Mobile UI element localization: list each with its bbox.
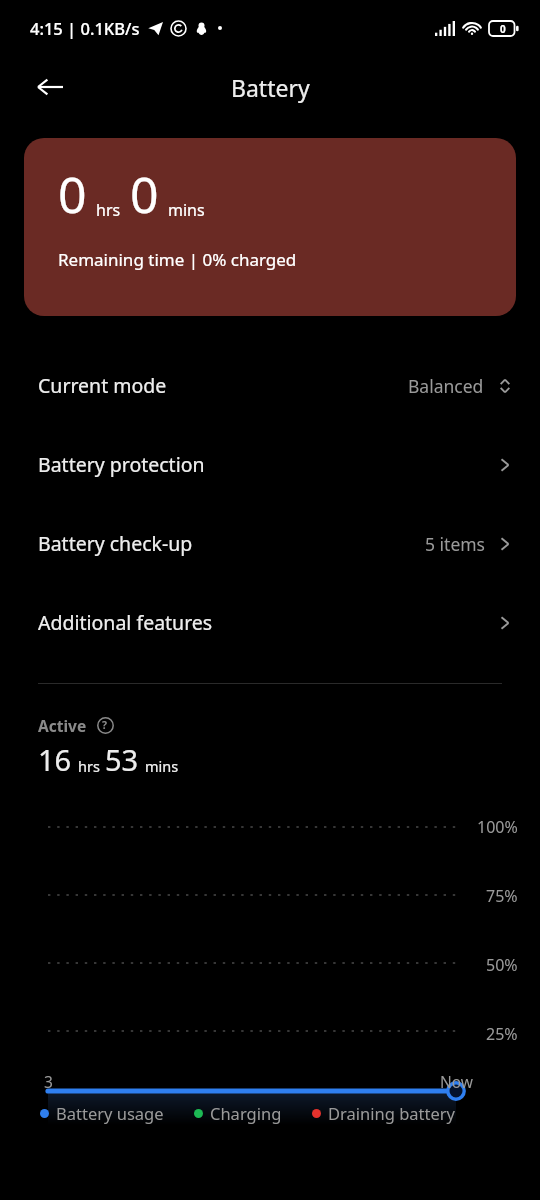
staticText: Draining battery <box>328 1102 455 1124</box>
staticText: Additional features <box>38 609 213 636</box>
staticText: Remaining time | 0% charged <box>58 248 297 271</box>
button[interactable]: Back <box>26 63 74 111</box>
button[interactable]: Charging <box>194 1102 282 1124</box>
staticText: 0 <box>130 160 159 228</box>
staticText: Battery <box>231 72 310 103</box>
button[interactable]: 0 <box>24 138 516 316</box>
staticText: 5 items <box>425 532 486 556</box>
button[interactable]: Help about active time <box>94 714 116 736</box>
staticText: Charging <box>210 1102 282 1124</box>
staticText: 53 <box>105 740 139 779</box>
button[interactable]: Current mode <box>0 346 540 425</box>
staticText: 50% <box>486 954 518 976</box>
staticText: Balanced <box>408 374 484 398</box>
staticText: 75% <box>486 885 518 907</box>
staticText: 0 <box>58 160 87 228</box>
staticText: Battery check-up <box>38 530 193 557</box>
button[interactable]: Draining battery <box>312 1102 455 1124</box>
staticText: Current mode <box>38 372 167 399</box>
button[interactable]: Additional features <box>0 583 540 662</box>
staticText: 16 <box>38 740 72 779</box>
staticText: ? <box>102 718 108 732</box>
staticText: 25% <box>486 1023 518 1045</box>
staticText: hrs <box>78 756 100 776</box>
button[interactable]: Battery usage <box>40 1102 164 1124</box>
staticText: Active <box>38 715 87 736</box>
staticText: Battery usage <box>56 1102 164 1124</box>
staticText: mins <box>168 199 205 221</box>
staticText: 0 <box>500 22 506 36</box>
staticText: mins <box>145 756 179 776</box>
staticText: Now <box>440 1071 474 1092</box>
staticText: 100% <box>477 816 518 838</box>
button[interactable]: Battery protection <box>0 425 540 504</box>
staticText: 3 <box>44 1071 53 1092</box>
staticText: 4:15 | 0.1KB/s <box>30 17 140 39</box>
staticText: Battery protection <box>38 451 205 478</box>
staticText: hrs <box>96 199 121 221</box>
button[interactable]: Battery check-up <box>0 504 540 583</box>
